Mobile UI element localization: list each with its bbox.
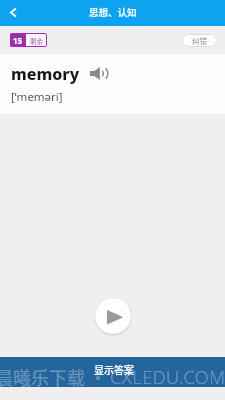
button[interactable]: 15 [10, 33, 47, 47]
button[interactable]: Pronounce [90, 67, 107, 80]
staticText: 纠错 [192, 35, 207, 46]
staticText: 晨曦乐下载 · [0, 364, 108, 390]
button[interactable]: 晨曦乐下载 · [0, 357, 225, 387]
button[interactable]: 纠错 [182, 34, 217, 47]
button[interactable]: Back [0, 0, 26, 26]
staticText: CXLEDU.COM [110, 365, 225, 390]
staticText: 显示答案 [94, 362, 134, 376]
button[interactable]: Play [95, 298, 131, 334]
staticText: [ˈmeməri] [11, 89, 63, 105]
staticText: memory [11, 63, 80, 85]
staticText: 15 [13, 35, 23, 46]
staticText: 剩余 [30, 36, 43, 45]
staticText: 思想、认知 [89, 5, 137, 19]
